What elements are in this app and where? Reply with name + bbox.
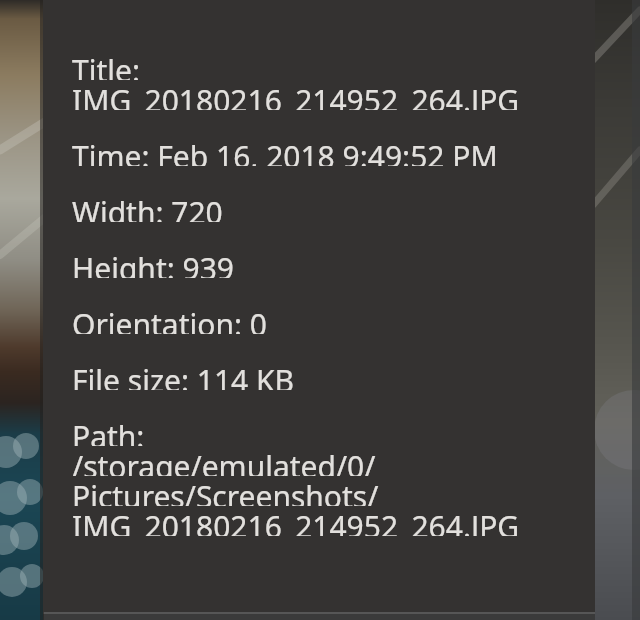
staticText: Width: 720: [72, 192, 223, 222]
button[interactable]: Image details panel: [43, 0, 595, 612]
staticText: Pictures/Screenshots/: [72, 476, 379, 506]
staticText: Path:: [72, 416, 145, 446]
staticText: IMG_20180216_214952_264.JPG: [72, 80, 520, 110]
staticText: Time: Feb 16, 2018 9:49:52 PM: [72, 136, 498, 166]
staticText: Title:: [72, 50, 140, 80]
staticText: /storage/emulated/0/: [72, 446, 376, 476]
staticText: IMG_20180216_214952_264.JPG: [72, 506, 520, 536]
staticText: File size: 114 KB: [72, 360, 295, 390]
staticText: Height: 939: [72, 248, 235, 278]
staticText: Orientation: 0: [72, 304, 267, 334]
